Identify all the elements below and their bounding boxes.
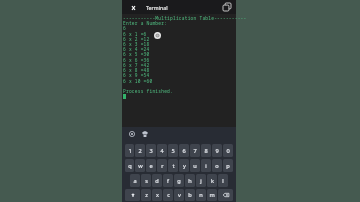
staticText: 6 x 3 =18 xyxy=(123,41,150,47)
button[interactable]: m xyxy=(207,189,217,201)
button[interactable]: 1 xyxy=(125,144,134,157)
button[interactable]: 2 xyxy=(135,144,145,157)
button[interactable]: o xyxy=(212,159,222,172)
button[interactable]: 7 xyxy=(190,144,200,157)
button[interactable]: i xyxy=(201,159,211,172)
staticText: x xyxy=(156,191,159,199)
staticText: t xyxy=(172,162,175,170)
staticText: 9 xyxy=(215,147,219,155)
staticText: s xyxy=(145,177,148,185)
staticText: a xyxy=(133,177,137,185)
button[interactable]: c xyxy=(163,189,173,201)
button[interactable]: 6 xyxy=(179,144,189,157)
button[interactable]: e xyxy=(146,159,156,172)
button[interactable]: Shift xyxy=(125,189,140,201)
staticText: 1 xyxy=(128,147,132,155)
staticText: 6 x 6 =36 xyxy=(123,57,150,63)
button[interactable]: d xyxy=(152,174,162,187)
staticText: r xyxy=(161,162,164,170)
staticText: e xyxy=(149,162,153,170)
staticText: 6 x 10 =60 xyxy=(123,78,153,84)
staticText: o xyxy=(215,162,219,170)
staticText: 7 xyxy=(193,147,197,155)
staticText: m xyxy=(209,191,215,199)
button[interactable]: 9 xyxy=(212,144,222,157)
staticText: 6 xyxy=(182,147,186,155)
button[interactable]: r xyxy=(157,159,167,172)
staticText: 6 x 4 =24 xyxy=(123,46,150,52)
button[interactable]: j xyxy=(196,174,206,187)
button[interactable]: a xyxy=(130,174,140,187)
staticText: w xyxy=(138,162,143,170)
staticText: l xyxy=(222,177,224,185)
staticText: y xyxy=(183,162,186,170)
button[interactable]: Themes xyxy=(141,130,148,137)
button[interactable]: q xyxy=(125,159,134,172)
staticText: d xyxy=(155,177,159,185)
button[interactable]: 5 xyxy=(168,144,178,157)
button[interactable]: Backspace xyxy=(218,189,233,201)
button[interactable]: b xyxy=(185,189,195,201)
button[interactable]: 8 xyxy=(201,144,211,157)
staticText: 6 x 9 =54 xyxy=(123,72,150,78)
button[interactable]: y xyxy=(179,159,189,172)
staticText: 6 x 7 =42 xyxy=(123,62,150,68)
button[interactable]: h xyxy=(185,174,195,187)
staticText: 8 xyxy=(204,147,208,155)
staticText: 6 xyxy=(123,25,126,31)
button[interactable]: u xyxy=(190,159,200,172)
button[interactable]: g xyxy=(174,174,184,187)
button[interactable]: s xyxy=(141,174,151,187)
button[interactable]: Close xyxy=(128,2,139,13)
staticText: 6 x 1 =6 xyxy=(123,31,147,37)
button[interactable]: 3 xyxy=(146,144,156,157)
staticText: c xyxy=(167,191,170,199)
staticText: i xyxy=(205,162,207,170)
staticText: n xyxy=(199,191,203,199)
staticText: z xyxy=(145,191,148,199)
button[interactable]: f xyxy=(163,174,173,187)
button[interactable]: z xyxy=(141,189,151,201)
staticText: 6 x 8 =48 xyxy=(123,67,150,73)
staticText: Enter a Number: xyxy=(123,20,168,26)
staticText: 0 xyxy=(226,147,230,155)
button[interactable]: n xyxy=(196,189,206,201)
staticText: h xyxy=(188,177,192,185)
staticText: q xyxy=(128,162,132,170)
staticText: f xyxy=(167,177,169,185)
button[interactable]: k xyxy=(207,174,217,187)
staticText: g xyxy=(177,177,181,185)
staticText: 2 xyxy=(138,147,142,155)
button[interactable]: t xyxy=(168,159,178,172)
staticText: 3 xyxy=(149,147,153,155)
button[interactable]: Clear clipboard xyxy=(128,130,135,137)
button[interactable]: x xyxy=(152,189,162,201)
staticText: v xyxy=(178,191,181,199)
staticText: b xyxy=(188,191,192,199)
staticText: 6 x 2 =12 xyxy=(123,36,150,42)
staticText: j xyxy=(200,177,202,185)
staticText: k xyxy=(211,177,214,185)
button[interactable]: w xyxy=(135,159,145,172)
button[interactable]: Windows xyxy=(221,1,233,13)
staticText: -----------Multiplication Table---------… xyxy=(123,15,237,21)
staticText: u xyxy=(193,162,197,170)
button[interactable]: 0 xyxy=(223,144,233,157)
staticText: 4 xyxy=(160,147,164,155)
staticText: p xyxy=(226,162,230,170)
button[interactable]: l xyxy=(218,174,228,187)
button[interactable]: 4 xyxy=(157,144,167,157)
staticText: Terminal xyxy=(146,4,168,11)
staticText: Process finished. xyxy=(123,88,173,94)
staticText: 5 xyxy=(171,147,175,155)
button[interactable]: p xyxy=(223,159,233,172)
staticText: 6 x 5 =30 xyxy=(123,51,150,57)
button[interactable]: v xyxy=(174,189,184,201)
